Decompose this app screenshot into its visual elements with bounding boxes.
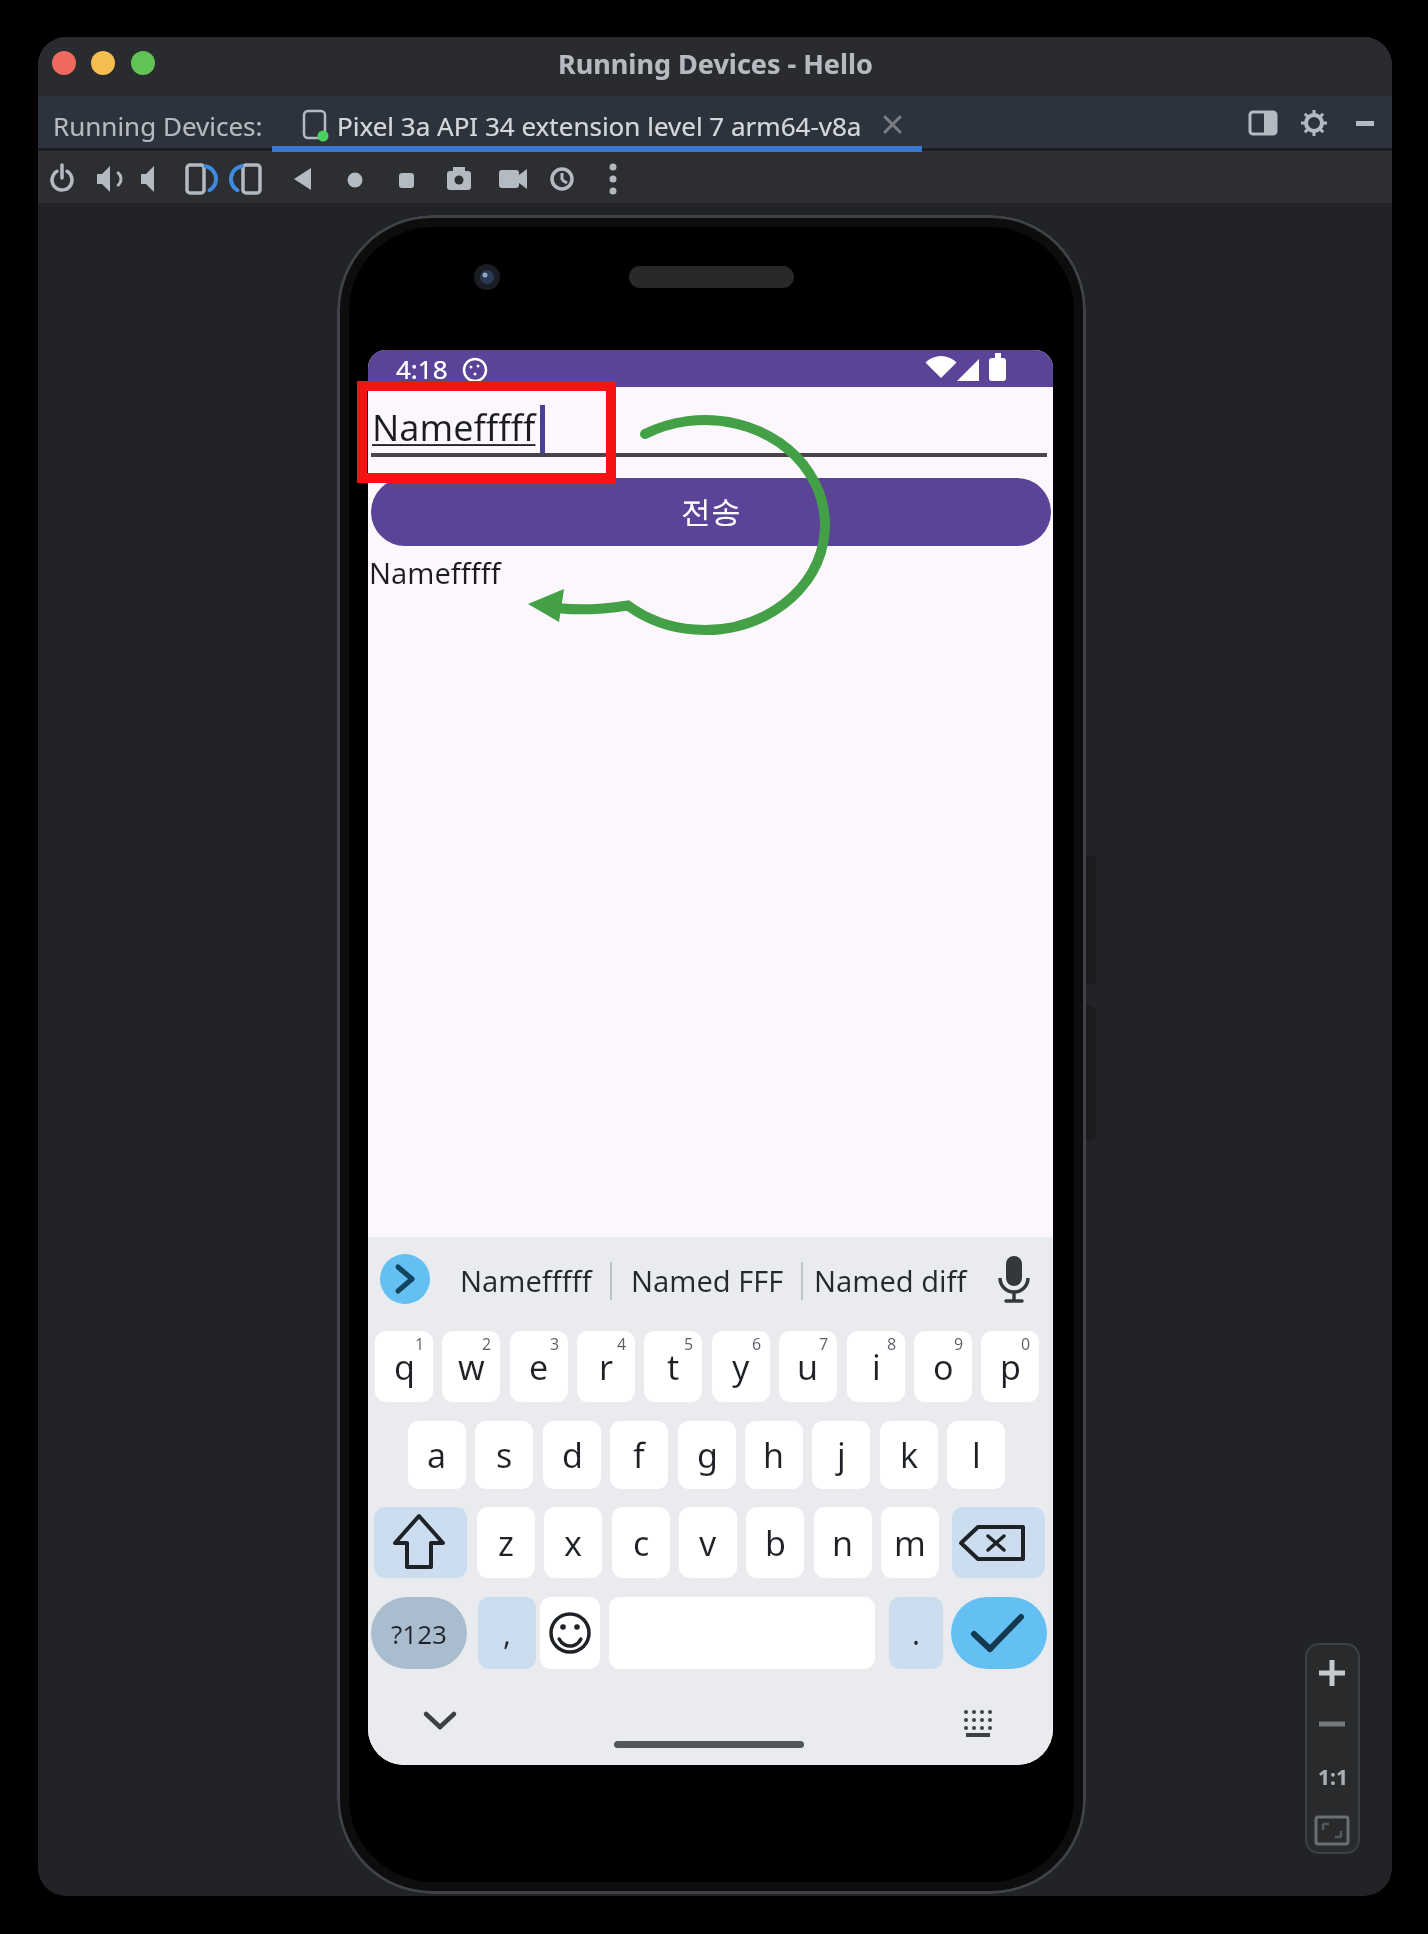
button[interactable] bbox=[1312, 1811, 1352, 1851]
staticText: y bbox=[732, 1344, 750, 1390]
staticText: r bbox=[599, 1344, 614, 1390]
button[interactable]: h bbox=[745, 1421, 803, 1489]
button[interactable]: v bbox=[679, 1507, 737, 1578]
button[interactable] bbox=[380, 1254, 430, 1304]
button[interactable]: r bbox=[577, 1331, 635, 1402]
button[interactable] bbox=[958, 1704, 998, 1744]
button[interactable] bbox=[86, 159, 126, 199]
button[interactable] bbox=[540, 1597, 600, 1669]
button[interactable] bbox=[130, 159, 170, 199]
button[interactable]: q bbox=[375, 1331, 433, 1402]
button[interactable]: o bbox=[914, 1331, 972, 1402]
button[interactable] bbox=[280, 96, 920, 146]
staticText: ?123 bbox=[391, 1616, 447, 1651]
staticText: v bbox=[699, 1520, 717, 1566]
staticText: Named FFF bbox=[631, 1261, 784, 1300]
button[interactable] bbox=[42, 159, 82, 199]
button[interactable]: a bbox=[408, 1421, 466, 1489]
button[interactable] bbox=[542, 159, 582, 199]
button[interactable]: e bbox=[510, 1331, 568, 1402]
button[interactable] bbox=[1312, 1653, 1352, 1693]
button[interactable]: Namefffff bbox=[446, 1258, 606, 1302]
staticText: 1 bbox=[415, 1333, 425, 1355]
button[interactable] bbox=[439, 159, 479, 199]
button[interactable]: g bbox=[678, 1421, 736, 1489]
button[interactable] bbox=[952, 1507, 1045, 1578]
button[interactable]: 1:1 bbox=[1305, 1758, 1360, 1796]
staticText: x bbox=[564, 1520, 582, 1566]
staticText: . bbox=[912, 1613, 921, 1654]
button[interactable] bbox=[994, 1254, 1038, 1304]
button[interactable] bbox=[283, 159, 323, 199]
staticText: o bbox=[933, 1344, 954, 1390]
button[interactable]: 전송 bbox=[371, 478, 1051, 546]
staticText: Namefffff bbox=[369, 553, 501, 592]
button[interactable]: y bbox=[712, 1331, 770, 1402]
staticText: 0 bbox=[1021, 1333, 1031, 1355]
staticText: 1:1 bbox=[1318, 1763, 1348, 1792]
staticText: l bbox=[972, 1432, 981, 1478]
button[interactable]: n bbox=[814, 1507, 872, 1578]
button[interactable]: p bbox=[981, 1331, 1039, 1402]
staticText: Named diff bbox=[814, 1261, 967, 1300]
button[interactable]: s bbox=[475, 1421, 533, 1489]
button[interactable] bbox=[371, 390, 1047, 457]
staticText: k bbox=[900, 1432, 919, 1478]
button[interactable] bbox=[951, 1597, 1047, 1669]
staticText: i bbox=[872, 1344, 881, 1390]
button[interactable] bbox=[226, 159, 266, 199]
staticText: 4 bbox=[617, 1333, 627, 1355]
button[interactable] bbox=[1312, 1704, 1352, 1744]
staticText: j bbox=[837, 1432, 846, 1478]
staticText: d bbox=[562, 1432, 583, 1478]
staticText: Namefffff bbox=[372, 403, 536, 452]
button[interactable]: u bbox=[779, 1331, 837, 1402]
button[interactable]: k bbox=[880, 1421, 938, 1489]
button[interactable]: Named FFF bbox=[622, 1258, 792, 1302]
button[interactable] bbox=[387, 159, 427, 199]
staticText: , bbox=[503, 1613, 512, 1654]
button[interactable]: l bbox=[947, 1421, 1005, 1489]
button[interactable]: , bbox=[478, 1597, 536, 1669]
button[interactable] bbox=[335, 159, 375, 199]
staticText: b bbox=[765, 1520, 786, 1566]
staticText: f bbox=[633, 1432, 645, 1478]
staticText: Running Devices - Hello bbox=[558, 45, 873, 82]
staticText: 7 bbox=[819, 1333, 829, 1355]
button[interactable]: j bbox=[812, 1421, 870, 1489]
staticText: g bbox=[697, 1432, 718, 1478]
button[interactable] bbox=[593, 159, 633, 199]
button[interactable]: Named diff bbox=[800, 1258, 980, 1302]
staticText: 4:18 bbox=[396, 351, 448, 386]
staticText: u bbox=[797, 1344, 819, 1390]
staticText: Pixel 3a API 34 extension level 7 arm64-… bbox=[337, 108, 862, 143]
staticText: w bbox=[458, 1344, 485, 1390]
button[interactable] bbox=[374, 1507, 467, 1578]
button[interactable] bbox=[491, 159, 531, 199]
button[interactable]: ?123 bbox=[371, 1597, 467, 1669]
staticText: h bbox=[763, 1432, 785, 1478]
button[interactable]: w bbox=[442, 1331, 500, 1402]
staticText: Running Devices: bbox=[53, 108, 263, 143]
button[interactable] bbox=[176, 159, 216, 199]
button[interactable] bbox=[420, 1703, 460, 1743]
button[interactable]: z bbox=[477, 1507, 535, 1578]
button[interactable]: b bbox=[746, 1507, 804, 1578]
button[interactable]: c bbox=[612, 1507, 670, 1578]
button[interactable]: f bbox=[610, 1421, 668, 1489]
staticText: n bbox=[832, 1520, 854, 1566]
staticText: 3 bbox=[550, 1333, 560, 1355]
button[interactable]: i bbox=[847, 1331, 905, 1402]
button[interactable]: x bbox=[544, 1507, 602, 1578]
button[interactable]: d bbox=[543, 1421, 601, 1489]
staticText: 5 bbox=[684, 1333, 694, 1355]
button[interactable]: t bbox=[644, 1331, 702, 1402]
button[interactable]: . bbox=[889, 1597, 943, 1669]
button[interactable]: m bbox=[881, 1507, 939, 1578]
staticText: Namefffff bbox=[460, 1261, 592, 1300]
staticText: 2 bbox=[482, 1333, 492, 1355]
staticText: 8 bbox=[887, 1333, 897, 1355]
staticText: e bbox=[529, 1344, 549, 1390]
staticText: t bbox=[667, 1344, 680, 1390]
